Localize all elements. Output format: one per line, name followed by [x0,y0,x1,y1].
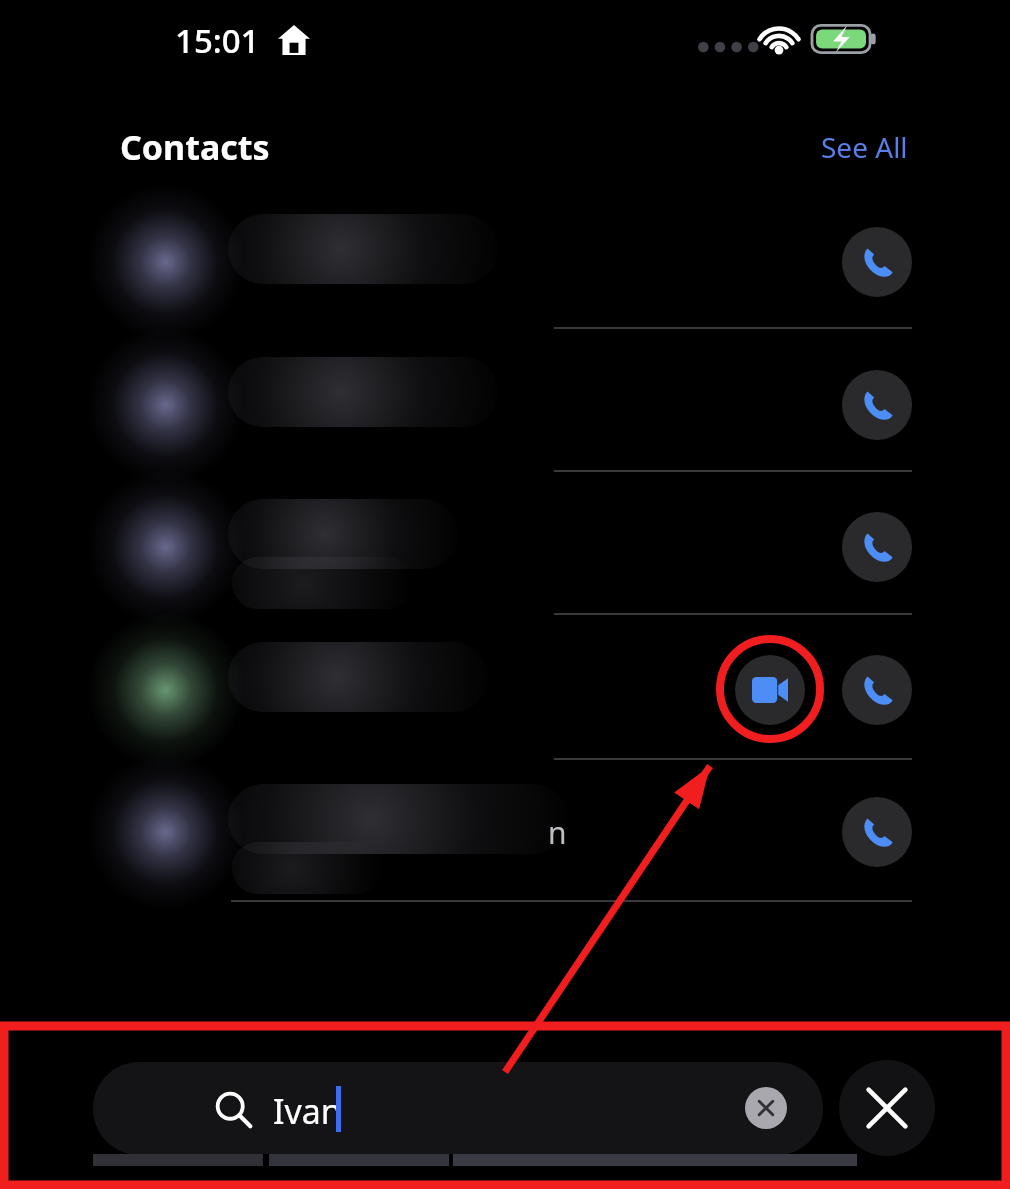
button[interactable]: Call [842,655,912,725]
button[interactable]: Call [842,370,912,440]
button[interactable] [0,477,1010,617]
button[interactable] [0,335,1010,475]
button[interactable]: Video call [735,655,805,725]
button[interactable]: See All [817,122,912,172]
staticText: See All [821,128,908,166]
button[interactable]: Call [842,797,912,867]
button[interactable]: Clear text [745,1087,787,1129]
staticText: Ivan [273,1088,342,1134]
staticText: n [548,812,567,853]
button[interactable]: Close search [839,1060,935,1156]
button[interactable]: Call [842,227,912,297]
button[interactable] [0,762,1010,902]
button[interactable] [0,620,1010,760]
staticText: 15:01 [175,18,260,63]
staticText: Contacts [120,124,270,170]
button[interactable]: Call [842,512,912,582]
button[interactable] [0,192,1010,332]
button[interactable]: Ivan [93,1062,823,1155]
